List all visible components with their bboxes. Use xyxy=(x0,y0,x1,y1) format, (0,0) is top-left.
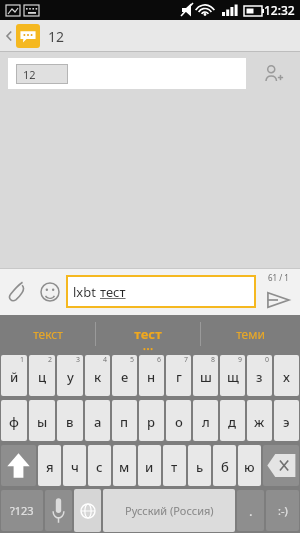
button[interactable]: и xyxy=(138,445,161,486)
staticText: 12 xyxy=(23,67,36,82)
staticText: 3 xyxy=(76,355,81,365)
button[interactable]: л xyxy=(193,400,218,441)
button[interactable]: 12 xyxy=(8,58,246,89)
staticText: г xyxy=(176,368,182,386)
staticText: тест xyxy=(134,325,162,343)
staticText: 4 xyxy=(103,355,108,365)
staticText: теми xyxy=(236,326,265,342)
button[interactable]: ы xyxy=(29,400,55,441)
button[interactable]: ж xyxy=(247,400,272,441)
button[interactable]: в xyxy=(57,400,83,441)
staticText: ф xyxy=(9,413,19,431)
staticText: н xyxy=(147,368,156,386)
button[interactable]: х xyxy=(274,355,299,396)
button[interactable]: п xyxy=(112,400,137,441)
button[interactable]: т xyxy=(163,445,186,486)
button[interactable]: :-) xyxy=(266,490,299,531)
staticText: 1 xyxy=(20,355,25,365)
button[interactable]: lxbt xyxy=(66,275,256,308)
staticText: 12 xyxy=(48,27,65,46)
button[interactable]: ц xyxy=(29,355,55,396)
button[interactable]: Add contact xyxy=(246,58,300,89)
button[interactable]: з xyxy=(247,355,272,396)
button[interactable]: к xyxy=(85,355,110,396)
button[interactable]: Send xyxy=(256,268,300,315)
button[interactable]: . xyxy=(237,490,264,531)
staticText: ь xyxy=(196,458,204,476)
staticText: ш xyxy=(200,368,212,386)
staticText: щ xyxy=(227,368,239,386)
staticText: к xyxy=(94,368,102,386)
button[interactable]: ?123 xyxy=(1,490,43,531)
button[interactable]: э xyxy=(274,400,299,441)
staticText: у xyxy=(67,368,74,386)
staticText: ю xyxy=(244,458,255,476)
staticText: 2 xyxy=(48,355,53,365)
button[interactable]: теми xyxy=(201,315,300,353)
button[interactable]: Русский (Россия) xyxy=(103,489,235,532)
button[interactable]: я xyxy=(38,445,61,486)
button[interactable]: Change language xyxy=(74,489,101,532)
staticText: и xyxy=(145,458,154,476)
button[interactable]: щ xyxy=(220,355,245,396)
staticText: ы xyxy=(37,413,48,431)
button[interactable]: 12 xyxy=(0,20,300,52)
button[interactable]: Attach xyxy=(0,268,34,315)
staticText: й xyxy=(10,368,19,386)
staticText: б xyxy=(221,458,229,476)
button[interactable]: ю xyxy=(238,445,261,486)
staticText: о xyxy=(175,413,183,431)
button[interactable]: тест xyxy=(96,315,200,353)
button[interactable]: а xyxy=(85,400,110,441)
staticText: 6 xyxy=(157,355,162,365)
staticText: м xyxy=(119,458,130,476)
button[interactable]: ь xyxy=(188,445,211,486)
staticText: 12:32 xyxy=(264,2,295,18)
button[interactable]: ф xyxy=(1,400,27,441)
staticText: ?123 xyxy=(10,503,34,518)
staticText: текст xyxy=(33,326,63,342)
staticText: ж xyxy=(254,413,265,431)
button[interactable]: с xyxy=(88,445,111,486)
button[interactable]: ч xyxy=(63,445,86,486)
staticText: 5 xyxy=(130,355,135,365)
staticText: :-) xyxy=(278,503,288,518)
button[interactable]: ш xyxy=(193,355,218,396)
staticText: д xyxy=(228,413,237,431)
button[interactable]: у xyxy=(57,355,83,396)
staticText: 8 xyxy=(211,355,216,365)
button[interactable]: г xyxy=(166,355,191,396)
staticText: я xyxy=(46,458,54,476)
staticText: т xyxy=(171,458,178,476)
staticText: е xyxy=(121,368,129,386)
staticText: ч xyxy=(71,458,79,476)
staticText: л xyxy=(202,413,210,431)
button[interactable]: н xyxy=(139,355,164,396)
staticText: . xyxy=(249,502,253,520)
staticText: э xyxy=(283,413,290,431)
staticText: х xyxy=(283,368,290,386)
staticText: ц xyxy=(38,368,47,386)
staticText: 7 xyxy=(184,355,189,365)
button[interactable]: б xyxy=(213,445,236,486)
staticText: п xyxy=(120,413,129,431)
staticText: 61 / 1 xyxy=(268,272,289,283)
staticText: с xyxy=(96,458,103,476)
staticText: а xyxy=(94,413,102,431)
button[interactable]: Shift xyxy=(1,445,36,486)
staticText: 9 xyxy=(238,355,243,365)
button[interactable]: й xyxy=(1,355,27,396)
button[interactable]: Voice input xyxy=(45,490,72,531)
button[interactable]: е xyxy=(112,355,137,396)
button[interactable]: Emoji xyxy=(34,268,66,315)
staticText: тест xyxy=(100,283,126,301)
staticText: з xyxy=(256,368,263,386)
button[interactable]: д xyxy=(220,400,245,441)
button[interactable]: м xyxy=(113,445,136,486)
staticText: 0 xyxy=(265,355,270,365)
button[interactable]: Backspace xyxy=(263,445,299,486)
button[interactable]: текст xyxy=(0,315,95,353)
button[interactable]: р xyxy=(139,400,164,441)
button[interactable]: о xyxy=(166,400,191,441)
staticText: в xyxy=(66,413,74,431)
